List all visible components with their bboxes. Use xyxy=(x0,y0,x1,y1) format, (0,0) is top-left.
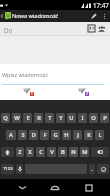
staticText: E xyxy=(26,114,30,122)
staticText: J xyxy=(77,131,79,139)
button[interactable]: ?123 xyxy=(1,164,14,174)
staticText: G xyxy=(53,131,58,139)
button[interactable]: Backspace xyxy=(91,147,109,157)
staticText: P xyxy=(103,114,107,122)
staticText: Y xyxy=(59,114,63,122)
button[interactable]: W xyxy=(12,113,21,123)
staticText: X xyxy=(28,148,32,156)
button[interactable]: Home xyxy=(43,179,67,196)
button[interactable]: Emoji xyxy=(97,164,109,174)
button[interactable]: M xyxy=(80,147,89,157)
staticText: I xyxy=(81,114,84,122)
staticText: K xyxy=(87,131,91,139)
button[interactable]: Back xyxy=(10,179,34,196)
staticText: M xyxy=(82,148,88,156)
staticText: Q xyxy=(3,114,8,122)
staticText: 1 xyxy=(31,92,33,96)
button[interactable]: T xyxy=(45,113,54,123)
staticText: Z xyxy=(18,148,22,156)
staticText: S xyxy=(21,131,25,139)
button[interactable]: . xyxy=(89,164,95,174)
button[interactable]: More options xyxy=(100,10,109,22)
button[interactable]: R xyxy=(34,113,43,123)
staticText: O xyxy=(91,114,96,122)
button[interactable]: Choose contact xyxy=(86,22,96,35)
button[interactable]: N xyxy=(69,147,78,157)
button[interactable]: Navigate up xyxy=(0,11,12,21)
button[interactable]: O xyxy=(89,113,98,123)
button[interactable]: Y xyxy=(56,113,65,123)
staticText: R xyxy=(37,114,41,122)
staticText: 17:47 xyxy=(93,1,109,9)
button[interactable]: I xyxy=(78,113,87,123)
button[interactable]: P xyxy=(100,113,109,123)
staticText: U xyxy=(69,114,74,122)
button[interactable]: A xyxy=(6,130,16,140)
button[interactable]: Send with SIM 1 xyxy=(20,85,36,99)
staticText: D xyxy=(31,131,36,139)
button[interactable]: Choose group xyxy=(96,22,107,35)
button[interactable]: V xyxy=(47,147,56,157)
staticText: N xyxy=(71,148,76,156)
staticText: F xyxy=(43,131,47,139)
staticText: Nowa wiadomość xyxy=(12,12,59,20)
button[interactable]: K xyxy=(84,130,93,140)
button[interactable]: F xyxy=(40,130,49,140)
button[interactable]: S xyxy=(18,130,27,140)
button[interactable]: L xyxy=(95,130,104,140)
button[interactable]: Attach xyxy=(88,10,100,22)
button[interactable]: B xyxy=(58,147,67,157)
staticText: T xyxy=(48,114,52,122)
staticText: C xyxy=(39,148,43,156)
staticText: V xyxy=(50,148,54,156)
staticText: B xyxy=(61,148,65,156)
button[interactable]: Recent apps xyxy=(77,179,101,196)
button[interactable]: J xyxy=(73,130,82,140)
button[interactable]: Shift xyxy=(1,147,14,157)
staticText: . xyxy=(91,165,93,173)
button[interactable]: Voice input xyxy=(16,164,23,174)
staticText: H xyxy=(64,131,69,139)
button[interactable]: Z xyxy=(16,147,24,157)
staticText: Do xyxy=(4,26,13,34)
button[interactable]: G xyxy=(51,130,60,140)
button[interactable]: H xyxy=(62,130,71,140)
staticText: W xyxy=(14,114,20,122)
button[interactable]: X xyxy=(26,147,34,157)
staticText: ?123 xyxy=(3,166,13,172)
staticText: A xyxy=(9,131,13,139)
staticText: 2 xyxy=(86,92,88,96)
button[interactable]: Q xyxy=(1,113,10,123)
staticText: Wpisz wiadomość xyxy=(2,71,48,78)
staticText: L xyxy=(98,131,102,139)
button[interactable]: C xyxy=(36,147,45,157)
button[interactable]: U xyxy=(67,113,76,123)
button[interactable]: E xyxy=(23,113,32,123)
button[interactable]: Send with SIM 2 xyxy=(75,85,91,99)
button[interactable]: D xyxy=(29,130,38,140)
